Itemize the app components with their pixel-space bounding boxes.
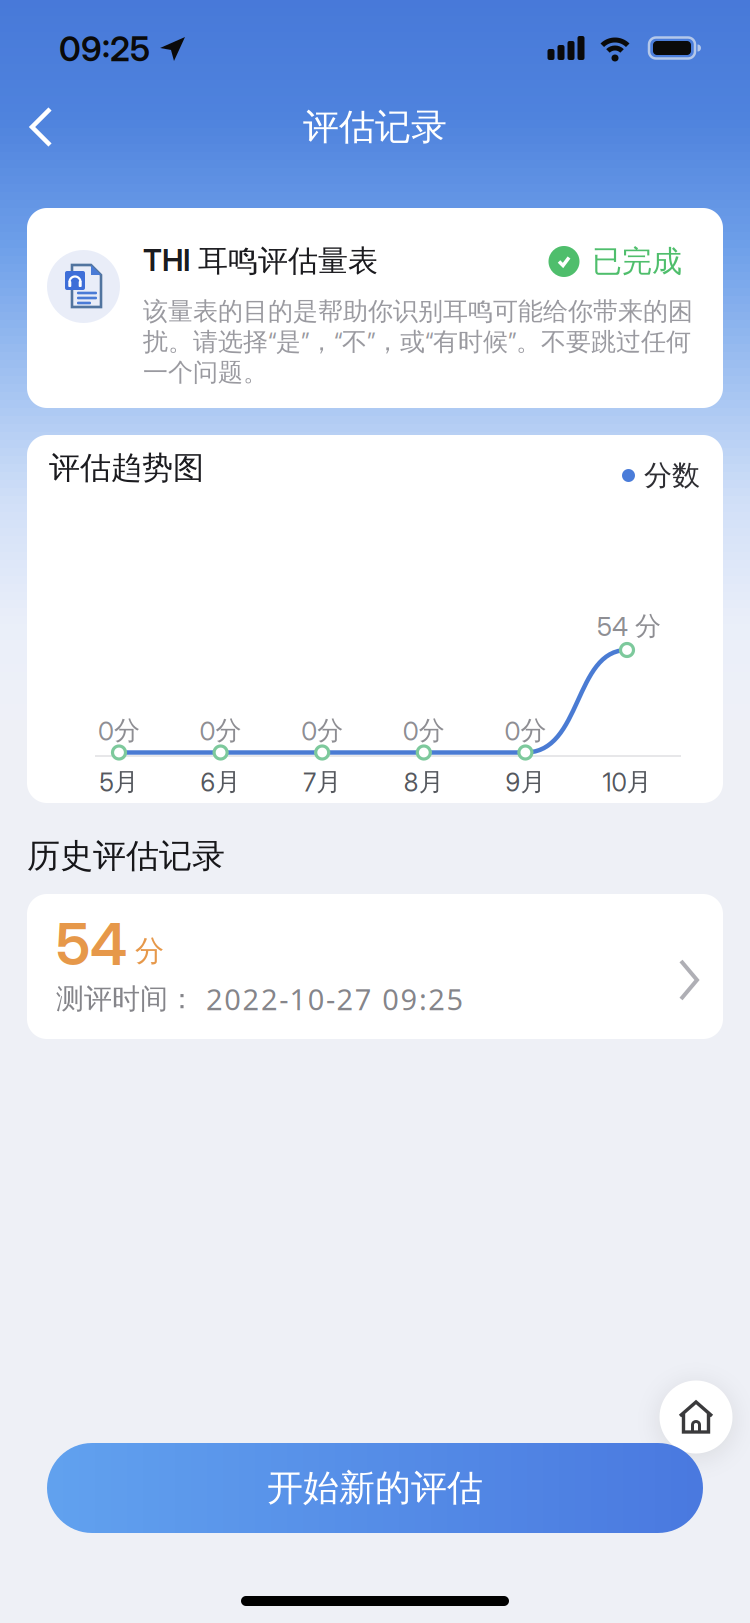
staticText: 一个问题。 [143, 357, 268, 388]
staticText: 5月 [99, 767, 138, 797]
staticText: 09:25 [59, 29, 150, 69]
staticText: 开始新的评估 [267, 1466, 483, 1510]
staticText: 历史评估记录 [27, 836, 225, 876]
staticText: 已完成 [592, 243, 682, 280]
staticText: 分 [135, 933, 164, 969]
staticText: THI 耳鸣评估量表 [143, 242, 378, 279]
staticText: 54 分 [597, 610, 661, 642]
staticText: 9月 [505, 767, 545, 797]
staticText: 7月 [303, 767, 341, 797]
staticText: 该量表的目的是帮助你识别耳鸣可能给你带来的困 [143, 296, 693, 327]
staticText: 0分 [403, 714, 445, 746]
staticText: 0分 [98, 714, 140, 746]
staticText: 评估趋势图 [49, 449, 204, 487]
staticText: 0分 [504, 714, 546, 746]
staticText: 评估记录 [303, 105, 447, 149]
button[interactable]: 54 [27, 894, 723, 1039]
staticText: 10月 [602, 767, 651, 797]
staticText: 2022-10-27 09:25 [206, 980, 463, 1018]
staticText: 分数 [644, 458, 700, 493]
staticText: 6月 [201, 767, 241, 797]
staticText: 54 [56, 910, 127, 978]
staticText: 0分 [200, 714, 242, 746]
button[interactable]: 开始新的评估 [47, 1443, 703, 1533]
staticText: 0分 [301, 714, 343, 746]
staticText: 测评时间： [56, 982, 196, 1016]
staticText: 8月 [404, 767, 444, 797]
button[interactable]: Home [659, 1380, 732, 1453]
button[interactable]: Back [20, 102, 70, 152]
staticText: 扰。请选择“是”，“不”，或“有时候”。不要跳过任何 [143, 327, 691, 357]
